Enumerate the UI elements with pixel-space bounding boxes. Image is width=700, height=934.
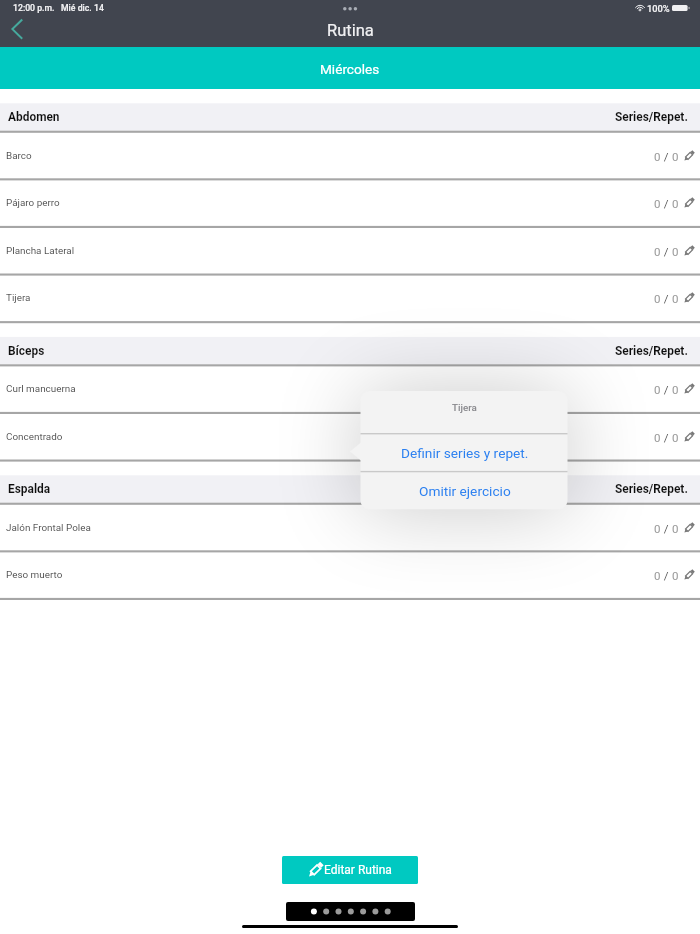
staticText: /	[661, 569, 672, 582]
button[interactable]: Miércoles	[0, 47, 700, 89]
button[interactable]: Tijera	[0, 275, 700, 321]
staticText: 0	[654, 245, 661, 258]
staticText: Bíceps	[8, 344, 45, 358]
staticText: Pájaro perro	[6, 197, 60, 209]
staticText: Rutina	[327, 21, 374, 40]
staticText: 0	[672, 292, 679, 305]
button[interactable]: Edit Pájaro perro	[684, 198, 694, 208]
staticText: 12:00 p.m. Mié dic. 14	[13, 3, 104, 13]
button[interactable]: Edit Concentrado	[684, 432, 694, 442]
staticText: Miércoles	[320, 61, 380, 77]
staticText: Abdomen	[8, 110, 60, 124]
staticText: Peso muerto	[6, 569, 63, 581]
button[interactable]: Concentrado	[0, 414, 700, 460]
staticText: 0	[672, 245, 679, 258]
staticText: 100%	[647, 3, 670, 14]
staticText: Barco	[6, 150, 32, 162]
button[interactable]: Edit Jalón Frontal Polea	[684, 523, 694, 533]
staticText: 0	[654, 569, 661, 582]
staticText: Concentrado	[6, 431, 63, 443]
staticText: Definir series y repet.	[401, 445, 529, 461]
button[interactable]: Edit Barco	[684, 151, 694, 161]
button[interactable]: Edit Peso muerto	[684, 570, 694, 580]
staticText: 0	[654, 150, 661, 163]
staticText: Espalda	[8, 482, 51, 496]
staticText: /	[661, 522, 672, 535]
button[interactable]: Plancha Lateral	[0, 228, 700, 274]
button[interactable]: Omitir ejercicio	[361, 472, 568, 509]
button[interactable]: Definir series y repet.	[361, 434, 568, 471]
staticText: 0	[672, 383, 679, 396]
staticText: 0	[654, 292, 661, 305]
staticText: Tijera	[6, 292, 31, 304]
staticText: Omitir ejercicio	[419, 483, 511, 499]
button[interactable]: Jalón Frontal Polea	[0, 505, 700, 551]
button[interactable]: Edit Curl mancuerna	[684, 384, 694, 394]
button[interactable]: Page indicator	[286, 902, 415, 921]
button[interactable]: Edit Plancha Lateral	[684, 246, 694, 256]
staticText: Editar Rutina	[324, 863, 392, 877]
button[interactable]: Edit Tijera	[684, 293, 694, 303]
staticText: 0	[654, 197, 661, 210]
staticText: /	[661, 197, 672, 210]
staticText: /	[661, 292, 672, 305]
staticText: /	[661, 431, 672, 444]
staticText: Curl mancuerna	[6, 383, 76, 395]
button[interactable]: Curl mancuerna	[0, 366, 700, 412]
staticText: Series/Repet.	[615, 482, 688, 496]
button[interactable]: Peso muerto	[0, 552, 700, 598]
staticText: /	[661, 383, 672, 396]
staticText: 0	[654, 522, 661, 535]
button[interactable]: Barco	[0, 133, 700, 179]
staticText: Tijera	[452, 402, 477, 413]
staticText: /	[661, 150, 672, 163]
staticText: 0	[654, 383, 661, 396]
staticText: 0	[672, 197, 679, 210]
button[interactable]: Pájaro perro	[0, 180, 700, 226]
staticText: 0	[672, 569, 679, 582]
staticText: Plancha Lateral	[6, 245, 75, 257]
staticText: Series/Repet.	[615, 344, 688, 358]
staticText: 0	[672, 522, 679, 535]
staticText: 0	[672, 431, 679, 444]
button[interactable]: Back	[2, 18, 32, 42]
staticText: Series/Repet.	[615, 110, 688, 124]
staticText: /	[661, 245, 672, 258]
staticText: Jalón Frontal Polea	[6, 522, 91, 534]
staticText: 0	[654, 431, 661, 444]
button[interactable]: Editar Rutina	[282, 856, 418, 884]
staticText: 0	[672, 150, 679, 163]
